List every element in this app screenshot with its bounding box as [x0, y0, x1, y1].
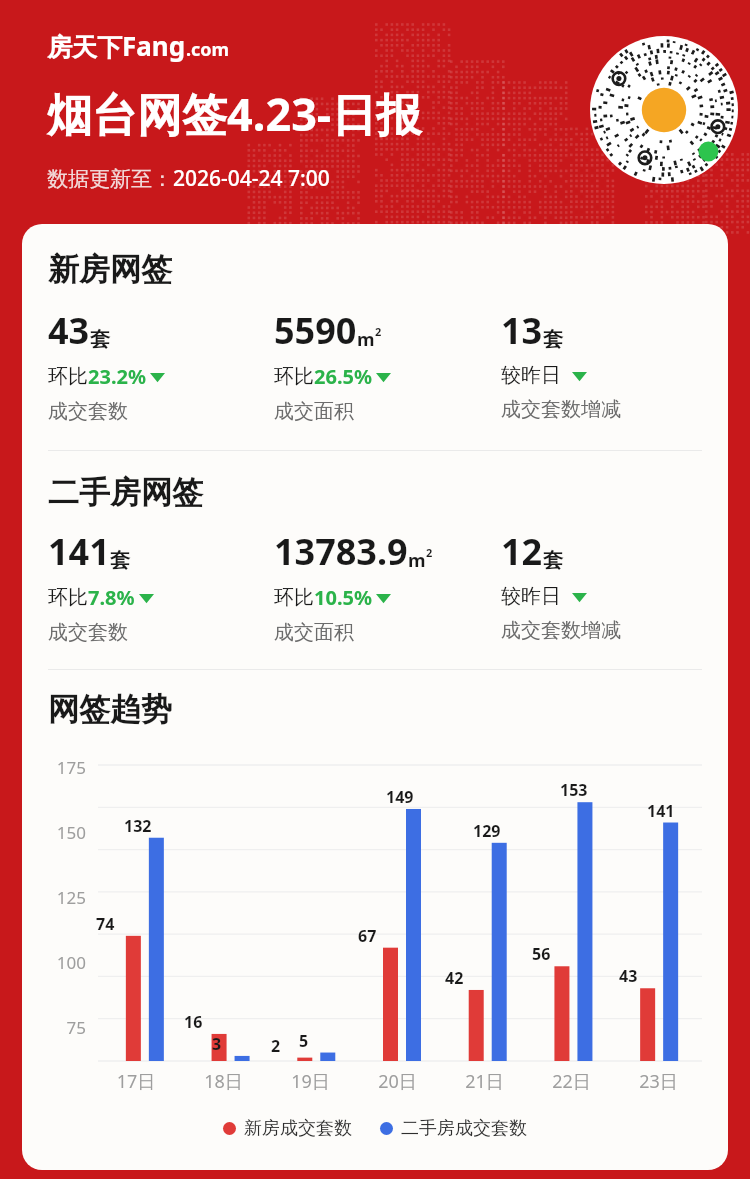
staticText: 二手房网签 [48, 473, 203, 512]
staticText: 套 [110, 548, 130, 573]
staticText: 12 [501, 527, 543, 576]
staticText: 141 [647, 800, 675, 822]
staticText: 23日 [615, 1069, 702, 1094]
staticText: 环比 [48, 364, 88, 389]
staticText: 5 [299, 1030, 309, 1052]
staticText: 74 [96, 913, 115, 935]
button[interactable]: 141 [48, 527, 274, 645]
button[interactable]: 12 [501, 527, 702, 643]
staticText: m [357, 327, 375, 352]
staticText: Fang [122, 28, 186, 63]
button[interactable]: 5590 [274, 306, 501, 424]
staticText: 13 [501, 306, 543, 355]
staticText: 新房网签 [48, 250, 172, 289]
staticText: m [408, 548, 426, 573]
button[interactable]: 房天下 [47, 28, 230, 63]
staticText: 成交套数增减 [501, 397, 621, 422]
staticText: 较昨日 [501, 363, 561, 388]
staticText: 13783.9 [274, 527, 408, 576]
staticText: 67 [358, 925, 377, 947]
staticText: 成交套数增减 [501, 618, 621, 643]
staticText: 环比 [48, 585, 88, 610]
staticText: 129 [473, 820, 501, 842]
staticText: 10.5% [314, 584, 372, 611]
staticText: 21日 [441, 1069, 528, 1094]
staticText: 43 [48, 306, 90, 355]
staticText: 房天下 [47, 32, 122, 63]
staticText: 175 [48, 756, 86, 779]
staticText: 7.8% [88, 584, 135, 611]
staticText: 2 [271, 1035, 281, 1057]
staticText: 75 [48, 1016, 86, 1039]
staticText: 149 [386, 786, 414, 808]
staticText: 成交面积 [274, 399, 354, 424]
staticText: 套 [90, 327, 110, 352]
staticText: 17日 [92, 1069, 180, 1094]
button[interactable]: 小程序码 [590, 36, 738, 184]
staticText: 成交套数 [48, 399, 128, 424]
staticText: 150 [48, 821, 86, 844]
staticText: 网签趋势 [48, 690, 172, 729]
staticText: 2 [426, 545, 433, 560]
button[interactable]: 13 [501, 306, 702, 422]
staticText: 套 [543, 327, 563, 352]
button[interactable]: 43 [48, 306, 274, 424]
button[interactable]: 13783.9 [274, 527, 501, 645]
staticText: 较昨日 [501, 584, 561, 609]
button[interactable]: 新房成交套数 [223, 1117, 352, 1140]
staticText: 数据更新至： [47, 166, 173, 192]
staticText: 20日 [354, 1069, 441, 1094]
staticText: 2026-04-24 7:00 [173, 164, 330, 193]
staticText: .com [186, 37, 230, 62]
staticText: 3 [212, 1033, 222, 1055]
staticText: 环比 [274, 585, 314, 610]
staticText: 100 [48, 951, 86, 974]
staticText: 成交套数 [48, 620, 128, 645]
staticText: 新房成交套数 [244, 1117, 352, 1140]
staticText: 5590 [274, 306, 357, 355]
staticText: 二手房成交套数 [401, 1117, 527, 1140]
staticText: 43 [619, 965, 638, 987]
staticText: 26.5% [314, 363, 372, 390]
staticText: 成交面积 [274, 620, 354, 645]
staticText: 132 [124, 815, 152, 837]
staticText: 环比 [274, 364, 314, 389]
staticText: 141 [48, 527, 110, 576]
staticText: 套 [543, 548, 563, 573]
staticText: 42 [445, 967, 464, 989]
staticText: 19日 [267, 1069, 354, 1094]
staticText: 18日 [180, 1069, 267, 1094]
button[interactable]: 二手房成交套数 [380, 1117, 527, 1140]
staticText: 23.2% [88, 363, 146, 390]
staticText: 125 [48, 886, 86, 909]
staticText: 2 [375, 324, 382, 339]
staticText: 烟台网签4.23-日报 [47, 83, 422, 144]
staticText: 153 [560, 779, 588, 801]
staticText: 56 [532, 943, 551, 965]
staticText: 22日 [528, 1069, 615, 1094]
staticText: 16 [184, 1011, 203, 1033]
